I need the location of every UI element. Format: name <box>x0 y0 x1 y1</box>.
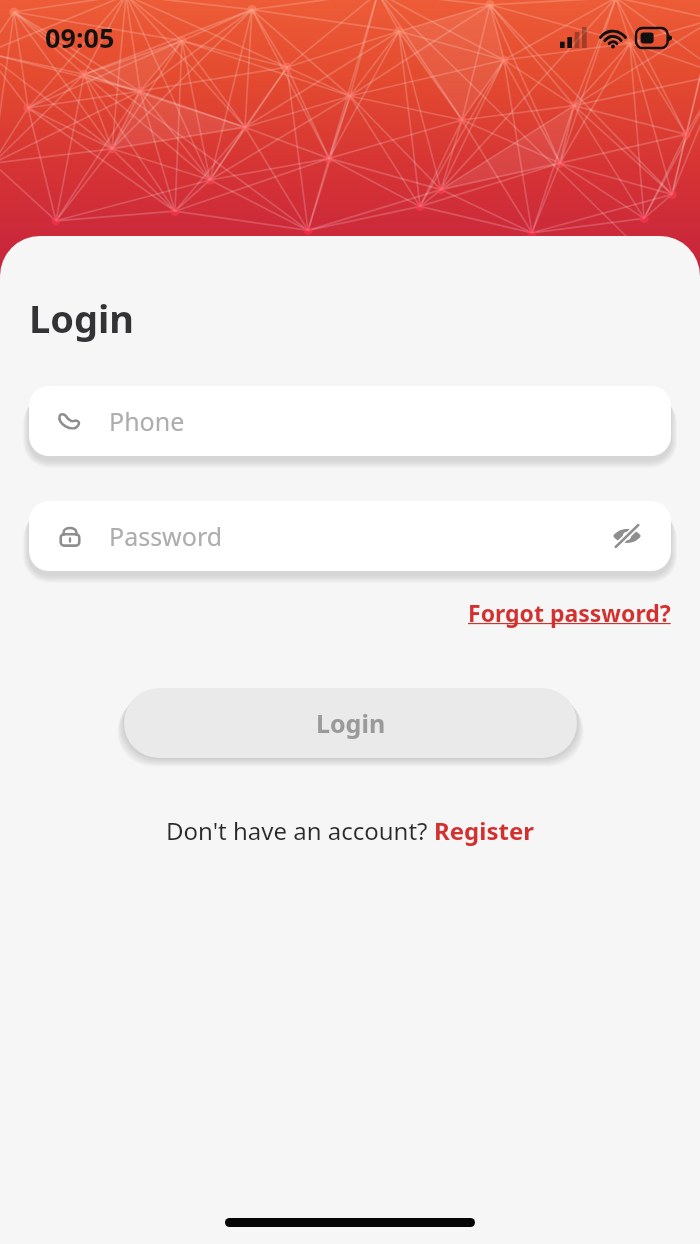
staticText: Phone <box>109 404 185 438</box>
button[interactable]: Show password <box>607 516 647 556</box>
button[interactable]: Register <box>434 814 534 847</box>
button[interactable]: Forgot password? <box>468 597 671 628</box>
staticText: Register <box>434 814 534 847</box>
staticText: Forgot password? <box>468 597 671 628</box>
button[interactable]: Phone <box>29 386 671 456</box>
button[interactable]: Password <box>29 501 671 571</box>
staticText: Password <box>109 519 223 553</box>
button[interactable]: Login <box>124 688 577 758</box>
staticText: Don't have an account? <box>166 814 434 847</box>
staticText: Login <box>316 706 386 740</box>
staticText: 09:05 <box>45 19 115 56</box>
staticText: Login <box>29 292 135 344</box>
